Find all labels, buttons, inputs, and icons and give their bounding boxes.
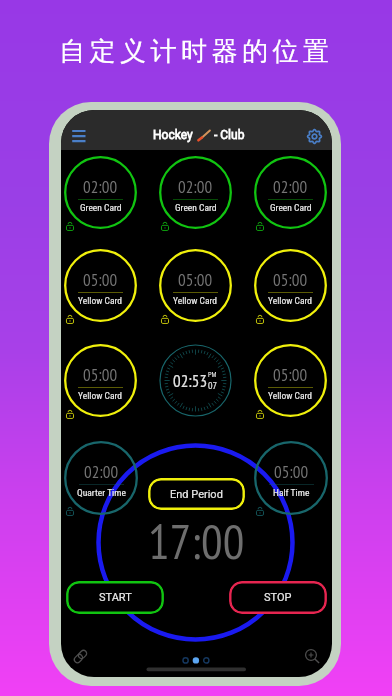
staticText: Yellow Card xyxy=(268,295,313,306)
button[interactable]: 02:00 xyxy=(254,156,327,229)
staticText: 自定义计时器的位置 xyxy=(59,35,334,68)
staticText: - Club xyxy=(214,128,245,142)
staticText: Green Card xyxy=(80,202,122,213)
staticText: Hockey xyxy=(153,128,193,142)
staticText: Yellow Card xyxy=(268,390,313,401)
button[interactable]: Zoom in xyxy=(302,646,322,666)
staticText: STOP xyxy=(264,591,292,604)
button[interactable]: 05:00 xyxy=(64,344,137,417)
button[interactable]: 02:00 xyxy=(64,156,137,229)
button[interactable]: Menu xyxy=(66,119,92,141)
staticText: Yellow Card xyxy=(78,390,123,401)
button[interactable]: End Period xyxy=(148,478,245,510)
staticText: 17:00 xyxy=(148,510,245,572)
staticText: 05:00 xyxy=(273,364,308,386)
button[interactable]: 02:53 xyxy=(159,344,232,417)
button[interactable]: STOP xyxy=(229,581,327,614)
button[interactable]: 05:00 xyxy=(254,249,327,322)
staticText: Yellow Card xyxy=(173,295,218,306)
staticText: 02:53 xyxy=(173,370,208,392)
button[interactable]: 02:00 xyxy=(64,441,138,515)
staticText: Green Card xyxy=(270,202,312,213)
staticText: 02:00 xyxy=(178,176,213,198)
staticText: End Period xyxy=(170,488,223,501)
button[interactable]: START xyxy=(66,581,164,614)
staticText: 05:00 xyxy=(83,364,118,386)
button[interactable]: 05:00 xyxy=(64,249,137,322)
staticText: PM xyxy=(208,371,217,379)
button[interactable]: 02:00 xyxy=(159,156,232,229)
staticText: 02:00 xyxy=(83,176,118,198)
button[interactable]: 05:00 xyxy=(159,249,232,322)
staticText: 05:00 xyxy=(273,269,308,291)
staticText: Quarter Time xyxy=(77,487,126,498)
button[interactable]: 05:00 xyxy=(254,441,328,515)
staticText: START xyxy=(99,591,132,604)
button[interactable]: Link xyxy=(71,647,90,666)
staticText: 07 xyxy=(208,379,217,392)
staticText: Green Card xyxy=(175,202,217,213)
staticText: 02:00 xyxy=(273,176,308,198)
staticText: 05:00 xyxy=(274,461,309,483)
staticText: Half Time xyxy=(273,487,310,498)
staticText: 02:00 xyxy=(84,461,119,483)
button[interactable]: Settings xyxy=(304,126,324,146)
staticText: 05:00 xyxy=(83,269,118,291)
staticText: Yellow Card xyxy=(78,295,123,306)
button[interactable]: 05:00 xyxy=(254,344,327,417)
staticText: 05:00 xyxy=(178,269,213,291)
